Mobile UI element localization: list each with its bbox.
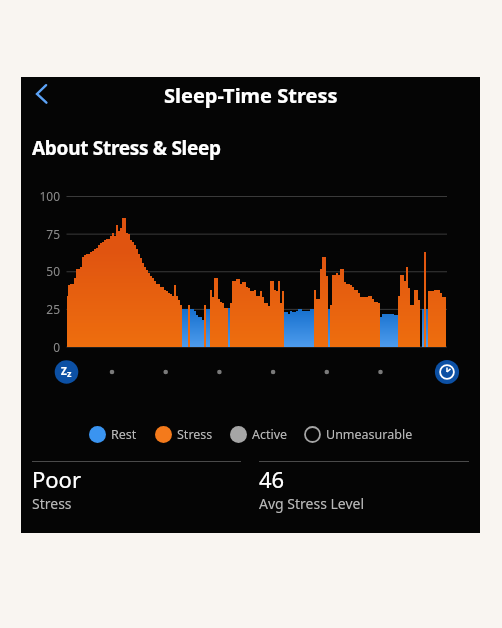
button[interactable]: Rest	[89, 426, 137, 443]
staticText: Z	[61, 364, 67, 378]
staticText: Stress	[177, 426, 213, 443]
staticText: Poor	[32, 464, 82, 494]
button[interactable]: Back	[27, 77, 63, 113]
staticText: 25	[21, 301, 60, 317]
staticText: Sleep-Time Stress	[164, 82, 338, 109]
staticText: Rest	[111, 426, 137, 443]
button[interactable]: Stress	[155, 426, 213, 443]
staticText: Avg Stress Level	[259, 494, 365, 513]
staticText: z	[67, 367, 72, 379]
button[interactable]: Active	[230, 426, 288, 443]
staticText: 0	[21, 339, 60, 355]
staticText: 100	[21, 188, 60, 204]
staticText: Unmeasurable	[326, 426, 413, 443]
button[interactable]: Unmeasurable	[304, 426, 413, 443]
staticText: About Stress & Sleep	[32, 135, 221, 161]
staticText: 50	[21, 263, 60, 279]
staticText: Stress	[32, 494, 72, 513]
staticText: 46	[259, 464, 285, 494]
staticText: 75	[21, 226, 60, 242]
staticText: Active	[252, 426, 288, 443]
